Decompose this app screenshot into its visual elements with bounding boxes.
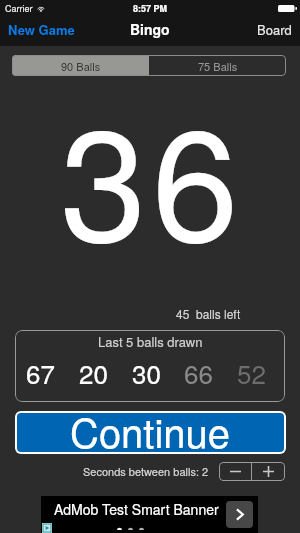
- staticText: Carrier: [5, 2, 33, 15]
- staticText: 66: [184, 354, 213, 391]
- staticText: 67: [26, 354, 55, 391]
- staticText: 8:57 PM: [133, 2, 168, 15]
- staticText: 20: [79, 354, 108, 391]
- button[interactable]: Increase seconds: [252, 462, 285, 481]
- staticText: Continue: [70, 413, 231, 452]
- staticText: 90 Balls: [61, 58, 101, 74]
- staticText: 36: [60, 63, 244, 263]
- button[interactable]: New Game: [0, 16, 81, 42]
- staticText: 45 balls left: [176, 305, 241, 322]
- staticText: 30: [132, 354, 161, 391]
- button[interactable]: Board: [251, 16, 300, 42]
- staticText: Board: [257, 20, 292, 38]
- staticText: New Game: [8, 20, 75, 38]
- button[interactable]: 90 Balls: [12, 55, 149, 76]
- staticText: 52: [237, 354, 266, 391]
- staticText: AdMob Test Smart Banner: [54, 499, 219, 519]
- staticText: 75 Balls: [198, 58, 238, 74]
- button[interactable]: Decrease seconds: [219, 462, 251, 481]
- staticText: Bingo: [130, 19, 170, 39]
- button[interactable]: 75 Balls: [149, 55, 286, 76]
- button[interactable]: Open ad: [226, 501, 253, 528]
- button[interactable]: Continue: [17, 413, 284, 452]
- button[interactable]: AdMob Test Smart Banner advertisement: [41, 496, 258, 533]
- staticText: Last 5 balls drawn: [98, 332, 203, 351]
- staticText: Seconds between balls: 2: [83, 463, 209, 479]
